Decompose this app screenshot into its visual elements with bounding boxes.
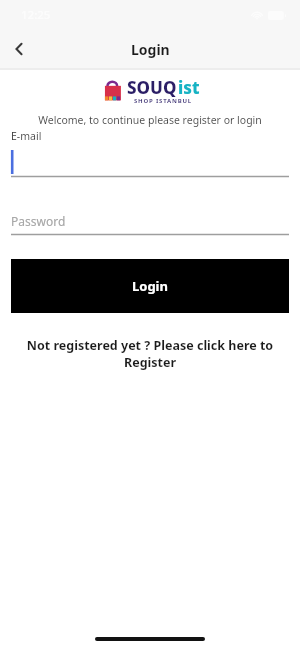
staticText: Login xyxy=(132,277,168,295)
button[interactable]: Login xyxy=(11,259,289,313)
staticText: Password xyxy=(11,213,66,229)
staticText: Not registered yet ? Please click here t… xyxy=(12,337,288,371)
button[interactable] xyxy=(11,150,289,177)
staticText: Login xyxy=(131,40,170,59)
staticText: Welcome, to continue please register or … xyxy=(11,113,289,127)
staticText: ist xyxy=(178,76,200,99)
button[interactable]: Password xyxy=(11,207,289,235)
staticText: SOUQ xyxy=(127,76,177,99)
staticText: E-mail xyxy=(11,129,300,143)
button[interactable]: Back xyxy=(0,30,38,68)
staticText: SHOP ISTANBUL xyxy=(134,97,192,105)
button[interactable]: Not registered yet ? Please click here t… xyxy=(12,337,288,371)
